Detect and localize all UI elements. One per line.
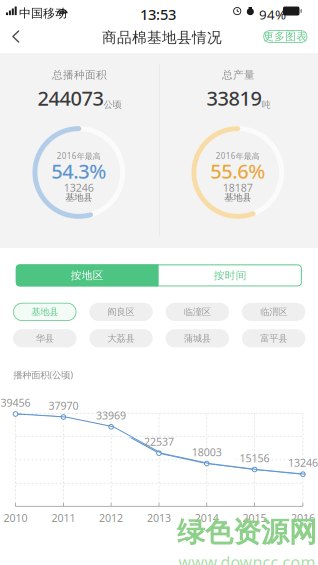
staticText: 244073 [37, 85, 103, 111]
button[interactable]: 按时间 [159, 264, 302, 286]
staticText: 基地县 [31, 306, 58, 318]
staticText: 播种面积(公顷) [13, 368, 73, 381]
staticText: 临渭区 [260, 306, 287, 318]
staticText: 华县 [36, 333, 54, 344]
staticText: 按时间 [214, 269, 247, 282]
button[interactable]: 更多图表 [258, 21, 312, 52]
staticText: 37970 [48, 398, 78, 413]
staticText: 13246 [64, 180, 94, 195]
staticText: 18187 [223, 180, 253, 195]
staticText: 2016 [291, 511, 315, 525]
button[interactable]: 按地区 [16, 264, 159, 286]
staticText: 按地区 [71, 269, 104, 282]
staticText: 2015 [243, 511, 267, 525]
staticText: 22537 [144, 435, 174, 449]
staticText: 蒲城县 [184, 333, 211, 344]
staticText: 总产量 [222, 68, 255, 81]
staticText: 绿色资源网 [177, 515, 317, 549]
staticText: 15156 [240, 451, 270, 465]
staticText: 阎良区 [107, 306, 134, 318]
staticText: 33819 [206, 85, 261, 111]
staticText: 中国移动 [19, 6, 67, 21]
button[interactable]: 大荔县 [89, 329, 153, 347]
staticText: 公顷 [103, 99, 121, 110]
staticText: 2010 [3, 511, 27, 525]
button[interactable]: 阎良区 [89, 303, 153, 321]
staticText: 18003 [192, 445, 222, 459]
button[interactable]: 临潼区 [166, 303, 229, 321]
staticText: 13:53 [140, 4, 176, 24]
staticText: 55.6% [210, 158, 265, 184]
staticText: 2013 [147, 511, 171, 525]
staticText: 临潼区 [184, 306, 211, 318]
staticText: 94% [259, 5, 286, 23]
staticText: 商品棉基地县情况 [102, 28, 222, 46]
staticText: 13246 [288, 456, 318, 470]
button[interactable]: 临渭区 [242, 303, 305, 321]
staticText: 2016年最高 [57, 151, 101, 161]
staticText: 2011 [51, 511, 75, 525]
staticText: www.downcc.com [178, 551, 315, 565]
button[interactable]: 蒲城县 [166, 329, 229, 347]
staticText: 2014 [195, 511, 219, 525]
staticText: 2016年最高 [216, 151, 260, 161]
button[interactable]: 富平县 [242, 329, 305, 347]
staticText: 54.3% [51, 158, 106, 184]
staticText: 基地县 [224, 192, 251, 203]
staticText: 富平县 [260, 333, 287, 344]
button[interactable]: 基地县 [13, 303, 76, 321]
staticText: 更多图表 [263, 30, 307, 43]
button[interactable]: 华县 [13, 329, 76, 347]
staticText: 大荔县 [107, 333, 134, 344]
staticText: 39456 [0, 395, 30, 410]
staticText: 33969 [96, 408, 126, 422]
staticText: 2012 [99, 511, 123, 525]
staticText: 总播种面积 [52, 68, 107, 81]
staticText: 吨 [261, 99, 270, 110]
button[interactable]: 返回 [0, 22, 34, 52]
staticText: 基地县 [65, 192, 92, 203]
